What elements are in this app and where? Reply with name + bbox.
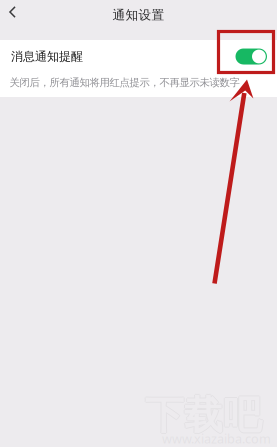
- button[interactable]: 返回: [0, 0, 25, 24]
- staticText: 消息通知提醒: [11, 49, 83, 64]
- button[interactable]: 消息通知提醒: [0, 40, 277, 73]
- staticText: 通知设置: [112, 7, 164, 23]
- button[interactable]: 消息通知提醒开关，已开启: [233, 46, 269, 66]
- staticText: 关闭后，所有通知将用红点提示，不再显示未读数字: [9, 76, 239, 89]
